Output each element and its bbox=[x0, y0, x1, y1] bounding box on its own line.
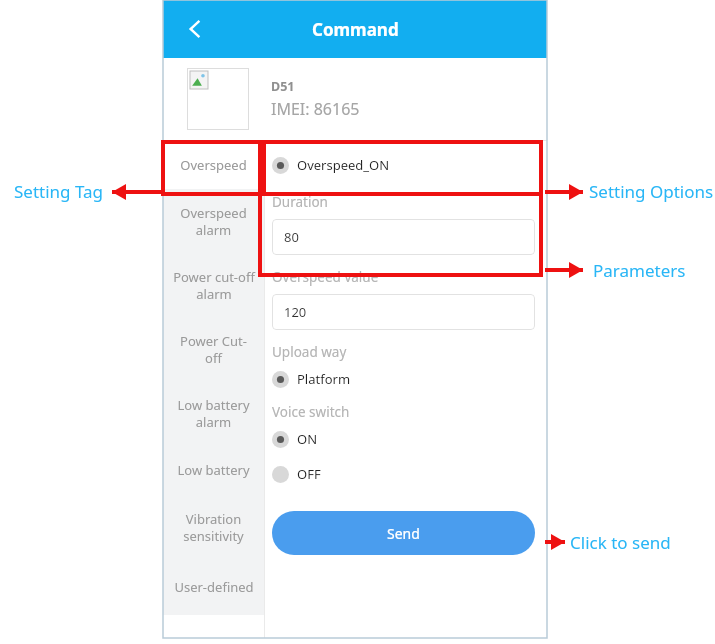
staticText: Power Cut- off bbox=[180, 332, 247, 367]
button[interactable]: Power Cut- off bbox=[163, 317, 264, 381]
staticText: IMEI: 86165 bbox=[271, 98, 360, 120]
staticText: 80 bbox=[284, 228, 299, 246]
staticText: ON bbox=[297, 430, 318, 448]
button[interactable]: Power cut-off alarm bbox=[163, 253, 264, 317]
staticText: Setting Tag bbox=[14, 180, 104, 203]
button[interactable]: Send bbox=[272, 511, 535, 555]
staticText: Command bbox=[312, 18, 399, 41]
staticText: Overspeed alarm bbox=[180, 204, 247, 239]
staticText: D51 bbox=[271, 78, 295, 95]
staticText: Send bbox=[387, 524, 420, 543]
staticText: Voice switch bbox=[272, 403, 350, 421]
button[interactable]: Platform bbox=[272, 364, 535, 394]
button[interactable]: Low battery bbox=[163, 445, 264, 495]
staticText: Setting Options bbox=[589, 180, 714, 203]
staticText: Overspeed_ON bbox=[297, 156, 390, 174]
button[interactable]: User-defined bbox=[163, 559, 264, 615]
staticText: Low battery bbox=[177, 461, 250, 479]
button[interactable]: Overspeed_ON bbox=[272, 150, 535, 180]
button[interactable]: OFF bbox=[272, 459, 535, 489]
staticText: Low battery alarm bbox=[177, 396, 250, 431]
button[interactable]: ON bbox=[272, 424, 535, 454]
button[interactable]: Back bbox=[175, 9, 215, 49]
staticText: Overspeed value bbox=[272, 268, 379, 286]
staticText: OFF bbox=[297, 465, 321, 483]
staticText: 120 bbox=[284, 303, 307, 321]
staticText: Parameters bbox=[593, 259, 686, 282]
button[interactable]: Overspeed alarm bbox=[163, 189, 264, 253]
staticText: Vibration sensitivity bbox=[183, 510, 244, 545]
staticText: User-defined bbox=[174, 578, 254, 596]
staticText: Overspeed bbox=[180, 156, 247, 174]
button[interactable]: Low battery alarm bbox=[163, 381, 264, 445]
button[interactable]: Vibration sensitivity bbox=[163, 495, 264, 559]
button[interactable]: 120 bbox=[272, 294, 535, 330]
staticText: Click to send bbox=[570, 531, 671, 554]
staticText: Duration bbox=[272, 193, 328, 211]
button[interactable]: Overspeed bbox=[163, 141, 264, 189]
staticText: Upload way bbox=[272, 343, 347, 361]
button[interactable]: 80 bbox=[272, 219, 535, 255]
staticText: Platform bbox=[297, 370, 351, 388]
staticText: Power cut-off alarm bbox=[173, 268, 255, 303]
